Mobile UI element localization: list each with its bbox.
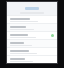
button[interactable]: [7, 2, 57, 15]
button[interactable]: [7, 16, 57, 23]
button[interactable]: [7, 48, 57, 55]
button[interactable]: [7, 56, 57, 63]
button[interactable]: [7, 40, 57, 47]
button[interactable]: [7, 32, 57, 39]
button[interactable]: [7, 24, 57, 31]
